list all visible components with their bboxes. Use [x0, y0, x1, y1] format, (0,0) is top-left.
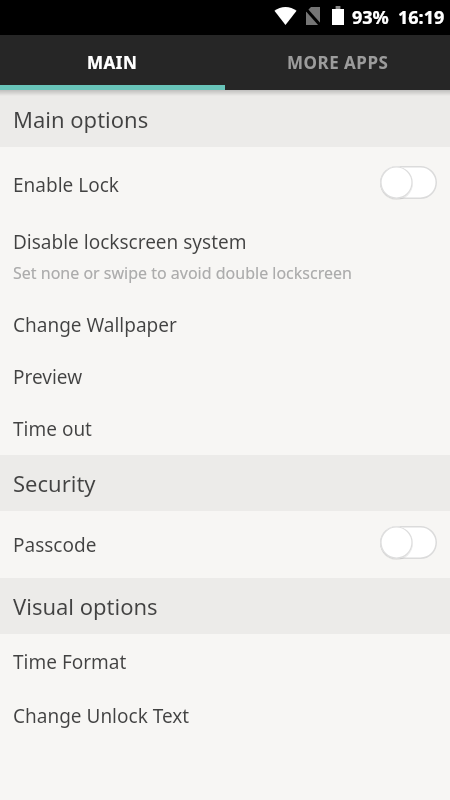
staticText: MORE APPS [287, 51, 389, 74]
button[interactable]: Change Wallpaper [0, 299, 450, 351]
button[interactable]: Preview [0, 351, 450, 403]
staticText: Security [13, 468, 96, 498]
button[interactable]: Time out [0, 403, 450, 455]
button[interactable]: Enable Lock [0, 147, 450, 223]
staticText: 16:19 [398, 5, 445, 30]
staticText: Preview [13, 364, 83, 390]
staticText: Disable lockscreen system [13, 229, 247, 255]
button[interactable]: Time Format [0, 634, 450, 690]
staticText: 93% [352, 5, 389, 30]
staticText: Set none or swipe to avoid double locksc… [13, 262, 352, 284]
staticText: Passcode [13, 532, 97, 558]
staticText: Time out [13, 416, 92, 442]
staticText: Time Format [13, 649, 127, 675]
staticText: MAIN [87, 51, 138, 74]
staticText: Enable Lock [13, 172, 119, 198]
staticText: Main options [13, 104, 149, 134]
staticText: Change Unlock Text [13, 703, 190, 729]
button[interactable]: Disable lockscreen system [0, 223, 450, 299]
button[interactable]: MORE APPS [225, 35, 450, 90]
staticText: Visual options [13, 591, 158, 621]
button[interactable]: MAIN [0, 35, 225, 90]
button[interactable]: Change Unlock Text [0, 690, 450, 742]
staticText: Change Wallpaper [13, 312, 177, 338]
button[interactable]: Passcode [0, 511, 450, 578]
